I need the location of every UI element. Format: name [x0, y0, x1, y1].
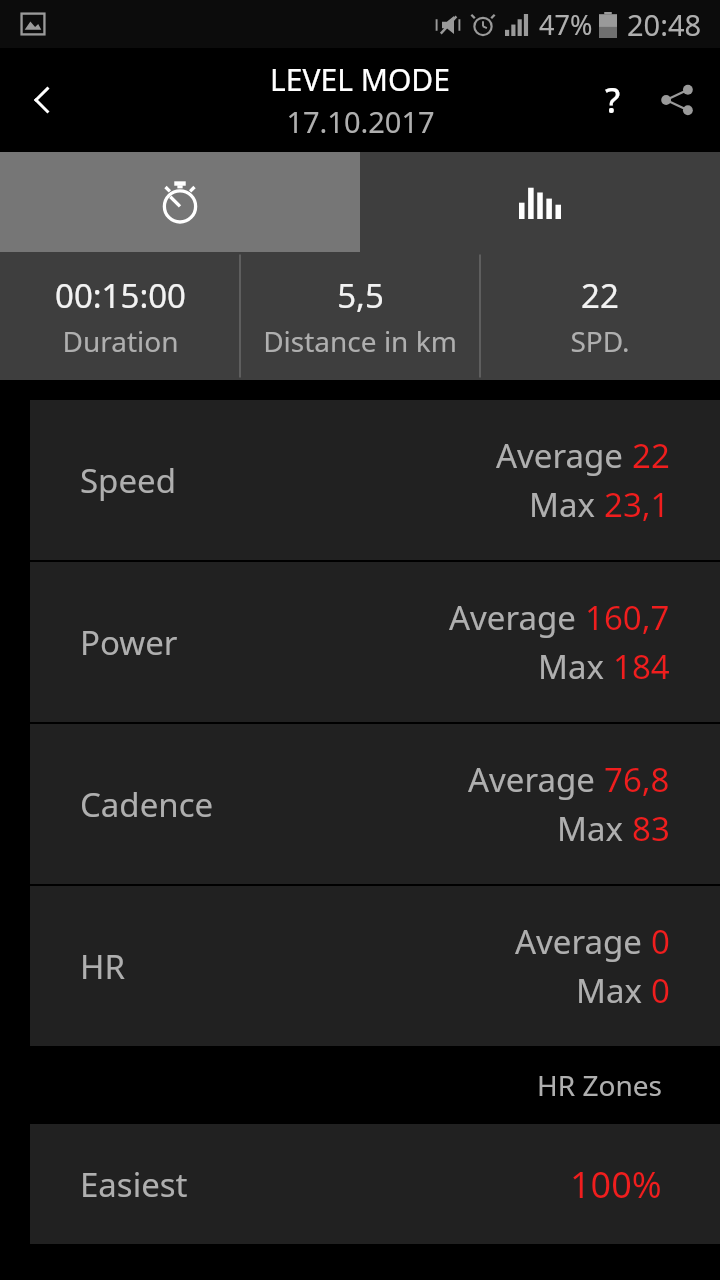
staticText: 100%	[570, 1160, 662, 1209]
staticText: Easiest	[80, 1162, 188, 1207]
staticText: Average	[449, 595, 585, 640]
staticText: LEVEL MODE	[270, 59, 450, 100]
staticText: Average	[468, 757, 604, 802]
staticText: Power	[80, 620, 178, 665]
button[interactable]: HR	[30, 886, 720, 1046]
staticText: HR	[80, 944, 125, 989]
staticText: 23,1	[604, 482, 670, 527]
staticText: Max	[576, 968, 651, 1013]
staticText: Average	[515, 919, 651, 964]
staticText: 22	[632, 433, 670, 478]
staticText: Duration	[62, 322, 179, 360]
staticText: Max	[557, 806, 632, 851]
staticText: Cadence	[80, 782, 214, 827]
staticText: 0	[651, 968, 670, 1013]
staticText: 22	[581, 273, 619, 318]
button[interactable]: Easiest	[30, 1124, 720, 1244]
staticText: SPD.	[570, 322, 630, 360]
staticText: Max	[529, 482, 604, 527]
staticText: 83	[632, 806, 670, 851]
button[interactable]: Cadence	[30, 724, 720, 884]
staticText: HR Zones	[537, 1066, 662, 1104]
button[interactable]: Speed	[30, 400, 720, 560]
staticText: 00:15:00	[55, 273, 186, 318]
staticText: 160,7	[585, 595, 670, 640]
button[interactable]: Power	[30, 562, 720, 722]
staticText: 20:48	[627, 5, 702, 44]
button[interactable]: 22	[480, 252, 720, 380]
button[interactable]: 00:15:00	[0, 252, 240, 380]
staticText: 0	[651, 919, 670, 964]
button[interactable]: Charts	[360, 152, 720, 252]
staticText: 76,8	[604, 757, 670, 802]
staticText: Speed	[80, 458, 176, 503]
staticText: Distance in km	[263, 322, 457, 360]
button[interactable]: Share	[648, 71, 706, 129]
staticText: 17.10.2017	[286, 102, 435, 141]
button[interactable]: Summary	[0, 152, 360, 252]
staticText: ?	[605, 77, 621, 123]
staticText: 5,5	[337, 273, 384, 318]
staticText: 184	[613, 644, 670, 689]
staticText: 47%	[539, 6, 593, 43]
button[interactable]: Help	[584, 71, 642, 129]
staticText: Max	[538, 644, 613, 689]
button[interactable]: 5,5	[240, 252, 480, 380]
button[interactable]: Back	[10, 68, 74, 132]
staticText: Average	[496, 433, 632, 478]
